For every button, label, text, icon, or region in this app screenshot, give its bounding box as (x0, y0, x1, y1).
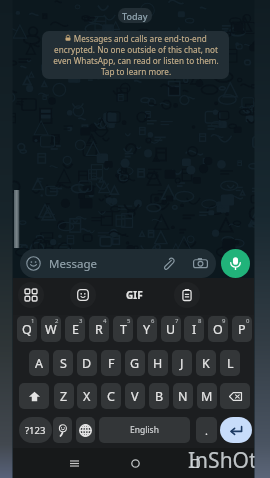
button[interactable]: Recents (175, 448, 215, 478)
button[interactable]: S (53, 350, 73, 376)
button[interactable]: ?123 (19, 417, 52, 443)
staticText: J (180, 355, 184, 372)
button[interactable]: B (149, 383, 169, 409)
button[interactable]: D (77, 350, 97, 376)
staticText: R (95, 321, 103, 338)
staticText: Message (49, 256, 97, 272)
staticText: Q (22, 321, 32, 338)
staticText: 3 (79, 317, 83, 325)
staticText: N (178, 388, 188, 405)
button[interactable]: X (77, 383, 97, 409)
button[interactable]: Back (54, 448, 94, 478)
button[interactable]: Clipboard (174, 282, 200, 308)
button[interactable]: Message (20, 249, 216, 278)
button[interactable]: N (173, 383, 193, 409)
button[interactable]: Emoji (53, 417, 72, 443)
staticText: T (120, 321, 127, 338)
staticText: 9 (222, 317, 226, 325)
staticText: . (205, 423, 208, 438)
button[interactable]: F (101, 350, 121, 376)
staticText: O (213, 321, 223, 338)
staticText: S (60, 355, 67, 372)
button[interactable]: E (65, 316, 85, 342)
staticText: 2 (55, 317, 59, 325)
button[interactable]: Backspace (220, 383, 250, 409)
button[interactable]: GIF (121, 282, 147, 308)
button[interactable]: Today (118, 8, 152, 23)
staticText: P (238, 321, 246, 338)
staticText: 5 (127, 317, 131, 325)
staticText: ?123 (25, 424, 46, 437)
staticText: V (131, 388, 139, 405)
button[interactable]: M (197, 383, 217, 409)
staticText: A (35, 355, 43, 372)
button[interactable]: Y (137, 316, 157, 342)
staticText: 0 (246, 317, 250, 325)
button[interactable]: K (196, 350, 216, 376)
staticText: I (192, 321, 197, 338)
button[interactable]: R (89, 316, 109, 342)
button[interactable]: Apps (18, 282, 44, 308)
staticText: K (202, 355, 210, 372)
button[interactable]: Record voice message (221, 249, 250, 278)
button[interactable]: P (232, 316, 252, 342)
button[interactable]: O (208, 316, 228, 342)
staticText: 7 (175, 317, 179, 325)
staticText: English (130, 424, 159, 436)
staticText: D (82, 355, 92, 372)
staticText: U (166, 321, 176, 338)
staticText: Y (143, 321, 151, 338)
staticText: Z (60, 388, 68, 405)
staticText: Today (122, 10, 148, 22)
staticText: 4 (103, 317, 107, 325)
button[interactable]: U (161, 316, 181, 342)
staticText: B (155, 388, 164, 405)
staticText: Messages and calls are end-to-end encryp… (53, 33, 219, 77)
button[interactable]: H (148, 350, 168, 376)
button[interactable]: Stickers (70, 282, 96, 308)
staticText: F (108, 355, 115, 372)
staticText: InShOt (188, 446, 257, 475)
button[interactable]: Home (115, 448, 155, 478)
staticText: GIF (126, 288, 143, 302)
button[interactable]: English (99, 417, 190, 443)
button[interactable]: V (125, 383, 145, 409)
staticText: 8 (198, 317, 202, 325)
button[interactable]: Change language (76, 417, 95, 443)
staticText: C (107, 388, 115, 405)
staticText: W (45, 321, 57, 338)
staticText: X (83, 388, 91, 405)
staticText: H (153, 355, 163, 372)
button[interactable]: A (29, 350, 49, 376)
button[interactable]: W (41, 316, 61, 342)
button[interactable]: C (101, 383, 121, 409)
button[interactable]: Z (54, 383, 74, 409)
button[interactable]: Enter (220, 417, 252, 443)
button[interactable]: Q (17, 316, 37, 342)
button[interactable]: L (220, 350, 240, 376)
button[interactable]: G (125, 350, 145, 376)
staticText: E (72, 321, 79, 338)
button[interactable]: Shift (19, 383, 49, 409)
staticText: G (130, 355, 140, 372)
staticText: 6 (151, 317, 155, 325)
button[interactable]: . (196, 417, 217, 443)
staticText: L (227, 355, 234, 372)
button[interactable]: T (113, 316, 133, 342)
staticText: M (201, 388, 213, 405)
button[interactable]: I (184, 316, 204, 342)
button[interactable]: Messages and calls are end-to-end encryp… (42, 31, 229, 79)
staticText: 1 (31, 317, 35, 325)
button[interactable]: J (172, 350, 192, 376)
